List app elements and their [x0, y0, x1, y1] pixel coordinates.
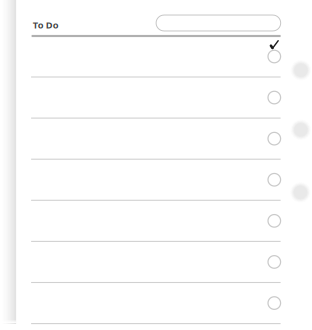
button[interactable]: To-do item 5 [32, 200, 281, 241]
staticText: To Do [33, 19, 59, 31]
button[interactable]: To-do item 6 [32, 241, 281, 282]
button[interactable]: Search [156, 15, 281, 31]
button[interactable]: To-do item 3 [32, 118, 281, 159]
button[interactable]: To-do item 2 [32, 77, 281, 118]
button[interactable]: To-do item 7 [32, 282, 281, 324]
button[interactable]: To-do item 1, completed [32, 36, 281, 77]
button[interactable]: To-do item 4 [32, 159, 281, 200]
